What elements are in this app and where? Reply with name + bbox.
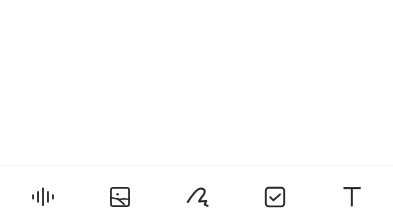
button[interactable]: Record audio	[19, 173, 67, 221]
button[interactable]: Draw	[174, 173, 222, 221]
button[interactable]: Insert image	[96, 173, 144, 221]
button[interactable]: Checklist	[251, 173, 299, 221]
button[interactable]: Text format	[328, 173, 376, 221]
